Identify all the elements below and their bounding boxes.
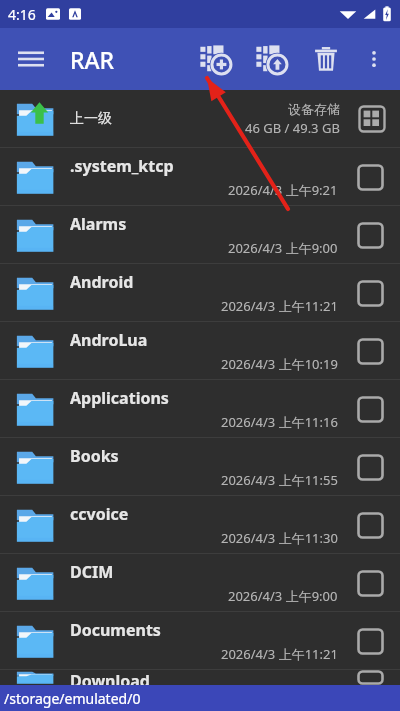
button[interactable]: Books (0, 438, 400, 495)
staticText: /storage/emulated/0 (4, 689, 141, 708)
button[interactable]: Download (0, 670, 400, 685)
button[interactable]: Select Download (348, 670, 392, 685)
staticText: 2026/4/3 上午11:21 (221, 297, 338, 315)
button[interactable]: Select Applications (348, 387, 392, 431)
staticText: 46 GB / 49.3 GB (245, 119, 340, 137)
button[interactable]: Applications (0, 380, 400, 437)
button[interactable]: AndroLua (0, 322, 400, 379)
button[interactable]: Delete (300, 33, 352, 85)
staticText: 2026/4/3 上午11:16 (221, 413, 338, 431)
staticText: ccvoice (70, 503, 129, 525)
staticText: 2026/4/3 上午11:21 (221, 645, 338, 663)
button[interactable]: Select .system_ktcp (348, 155, 392, 199)
button[interactable]: .system_ktcp (0, 148, 400, 205)
button[interactable]: ccvoice (0, 496, 400, 553)
button[interactable]: Create archive (188, 31, 244, 87)
staticText: Alarms (70, 213, 127, 235)
button[interactable]: Select Alarms (348, 213, 392, 257)
staticText: Android (70, 271, 134, 293)
staticText: 上一级 (70, 110, 112, 128)
button[interactable]: Extract archive (244, 31, 300, 87)
button[interactable]: 上一级 (0, 90, 400, 147)
staticText: 4:16 (8, 5, 36, 24)
button[interactable]: Alarms (0, 206, 400, 263)
staticText: 2026/4/3 上午10:19 (221, 355, 338, 373)
staticText: 设备存储 (288, 101, 340, 117)
staticText: Documents (70, 619, 161, 641)
staticText: Download (70, 670, 150, 685)
staticText: 2026/4/3 上午11:55 (221, 471, 338, 489)
staticText: Applications (70, 387, 169, 409)
button[interactable]: RAR (62, 44, 123, 75)
button[interactable]: Android (0, 264, 400, 321)
button[interactable]: Select Documents (348, 619, 392, 663)
button[interactable]: Documents (0, 612, 400, 669)
button[interactable]: Select ccvoice (348, 503, 392, 547)
button[interactable]: Grid view (352, 99, 392, 139)
button[interactable]: Select AndroLua (348, 329, 392, 373)
staticText: AndroLua (70, 329, 148, 351)
staticText: DCIM (70, 561, 114, 583)
button[interactable]: /storage/emulated/0 (0, 689, 400, 708)
button[interactable]: DCIM (0, 554, 400, 611)
staticText: Books (70, 445, 119, 467)
button[interactable]: Menu (0, 28, 62, 90)
staticText: RAR (70, 44, 115, 75)
staticText: 2026/4/3 上午9:00 (228, 239, 338, 257)
button[interactable]: Select Books (348, 445, 392, 489)
staticText: 2026/4/3 上午9:00 (228, 587, 338, 605)
button[interactable]: Select Android (348, 271, 392, 315)
staticText: 2026/4/3 上午9:21 (228, 181, 338, 199)
button[interactable]: Select DCIM (348, 561, 392, 605)
button[interactable]: More options (352, 37, 396, 81)
staticText: .system_ktcp (70, 155, 174, 177)
staticText: 2026/4/3 上午11:30 (221, 529, 338, 547)
